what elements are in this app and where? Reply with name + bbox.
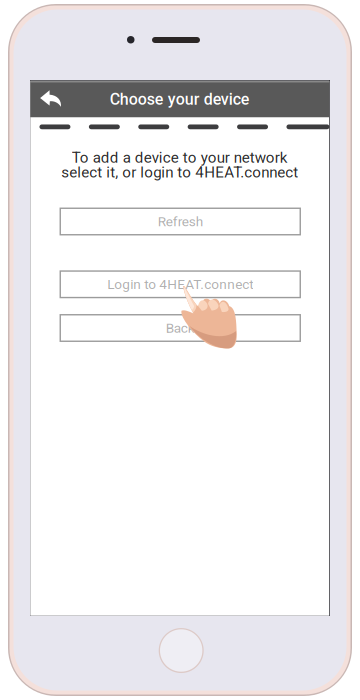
staticText: Choose your device <box>110 90 250 109</box>
button[interactable]: Refresh <box>60 208 300 235</box>
staticText: Login to 4HEAT.connect <box>107 276 253 292</box>
staticText: Back <box>166 320 195 336</box>
staticText: Refresh <box>158 213 203 229</box>
button[interactable]: Back <box>40 90 61 107</box>
button[interactable]: Login to 4HEAT.connect <box>60 271 300 298</box>
button[interactable]: Back <box>60 315 300 341</box>
staticText: select it, or login to 4HEAT.connect <box>61 163 298 181</box>
staticText: To add a device to your network <box>72 149 288 166</box>
